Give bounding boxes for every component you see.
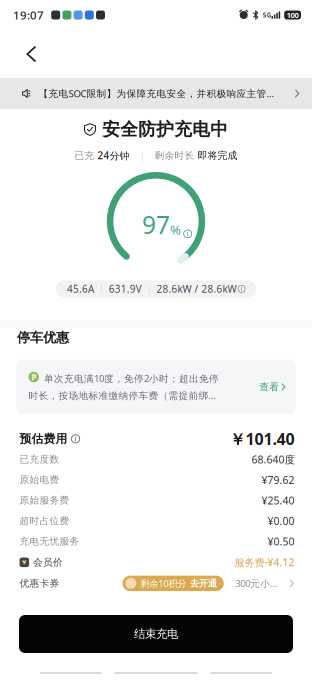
- staticText: 停车优惠: [17, 329, 69, 346]
- button[interactable]: P: [16, 360, 296, 414]
- staticText: |: [139, 149, 144, 162]
- button[interactable]: 结束充电: [19, 615, 293, 653]
- staticText: 已充: [74, 149, 97, 162]
- staticText: 单次充电满10度，免停2小时；超出免停: [44, 372, 219, 385]
- staticText: 服务费-¥4.12: [234, 555, 294, 569]
- staticText: 安全防护充电中: [102, 118, 228, 141]
- staticText: 查看: [259, 381, 279, 393]
- staticText: 原始服务费: [19, 494, 69, 506]
- staticText: ¥0.00: [267, 514, 294, 528]
- staticText: 300元小…: [235, 577, 278, 590]
- button[interactable]: 45.6A: [56, 280, 256, 297]
- staticText: 去开通: [190, 577, 217, 589]
- staticText: 68.640度: [251, 452, 294, 466]
- staticText: 时长，按场地标准缴纳停车费（需提前绑…: [28, 389, 216, 402]
- staticText: 优惠卡券: [19, 577, 59, 589]
- staticText: 会员价: [33, 556, 63, 568]
- staticText: 97: [142, 208, 170, 241]
- button[interactable]: 优惠卡券: [19, 576, 294, 590]
- staticText: 已充度数: [19, 453, 59, 465]
- staticText: 预估费用: [19, 431, 67, 446]
- staticText: ¥79.62: [261, 473, 294, 487]
- staticText: 结束充电: [134, 627, 178, 641]
- staticText: P: [31, 371, 36, 383]
- staticText: 100: [287, 10, 299, 20]
- staticText: 24分钟: [97, 149, 129, 162]
- staticText: 超时占位费: [19, 515, 69, 527]
- staticText: ¥25.40: [261, 493, 294, 507]
- staticText: 剩余10积分: [140, 577, 186, 590]
- button[interactable]: 【充电SOC限制】为保障充电安全，并积极响应主管…: [0, 78, 312, 109]
- staticText: 45.6A: [67, 282, 94, 296]
- staticText: 即将完成: [197, 149, 237, 162]
- staticText: ¥0.50: [267, 534, 294, 548]
- staticText: 【充电SOC限制】为保障充电安全，并积极响应主管…: [38, 87, 274, 100]
- staticText: 19:07: [13, 7, 44, 23]
- staticText: 28.6kW / 28.6kW: [157, 282, 237, 296]
- staticText: 5G: [263, 11, 271, 19]
- staticText: 631.9V: [109, 282, 142, 296]
- staticText: 充电无忧服务: [19, 535, 79, 547]
- button[interactable]: Back: [14, 35, 48, 73]
- staticText: 剩余时长: [154, 149, 197, 162]
- staticText: ￥101.40: [229, 428, 294, 450]
- staticText: 原始电费: [19, 474, 59, 486]
- staticText: %: [170, 221, 181, 238]
